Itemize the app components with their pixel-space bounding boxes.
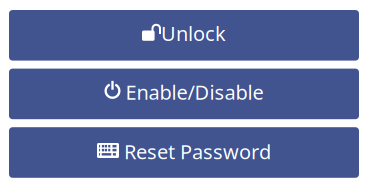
- button[interactable]: Enable/Disable: [9, 69, 359, 119]
- button[interactable]: Unlock: [9, 10, 359, 61]
- button[interactable]: Reset Password: [9, 127, 359, 178]
- staticText: Reset Password: [124, 138, 271, 165]
- staticText: Enable/Disable: [125, 79, 263, 105]
- staticText: Unlock: [161, 20, 226, 47]
